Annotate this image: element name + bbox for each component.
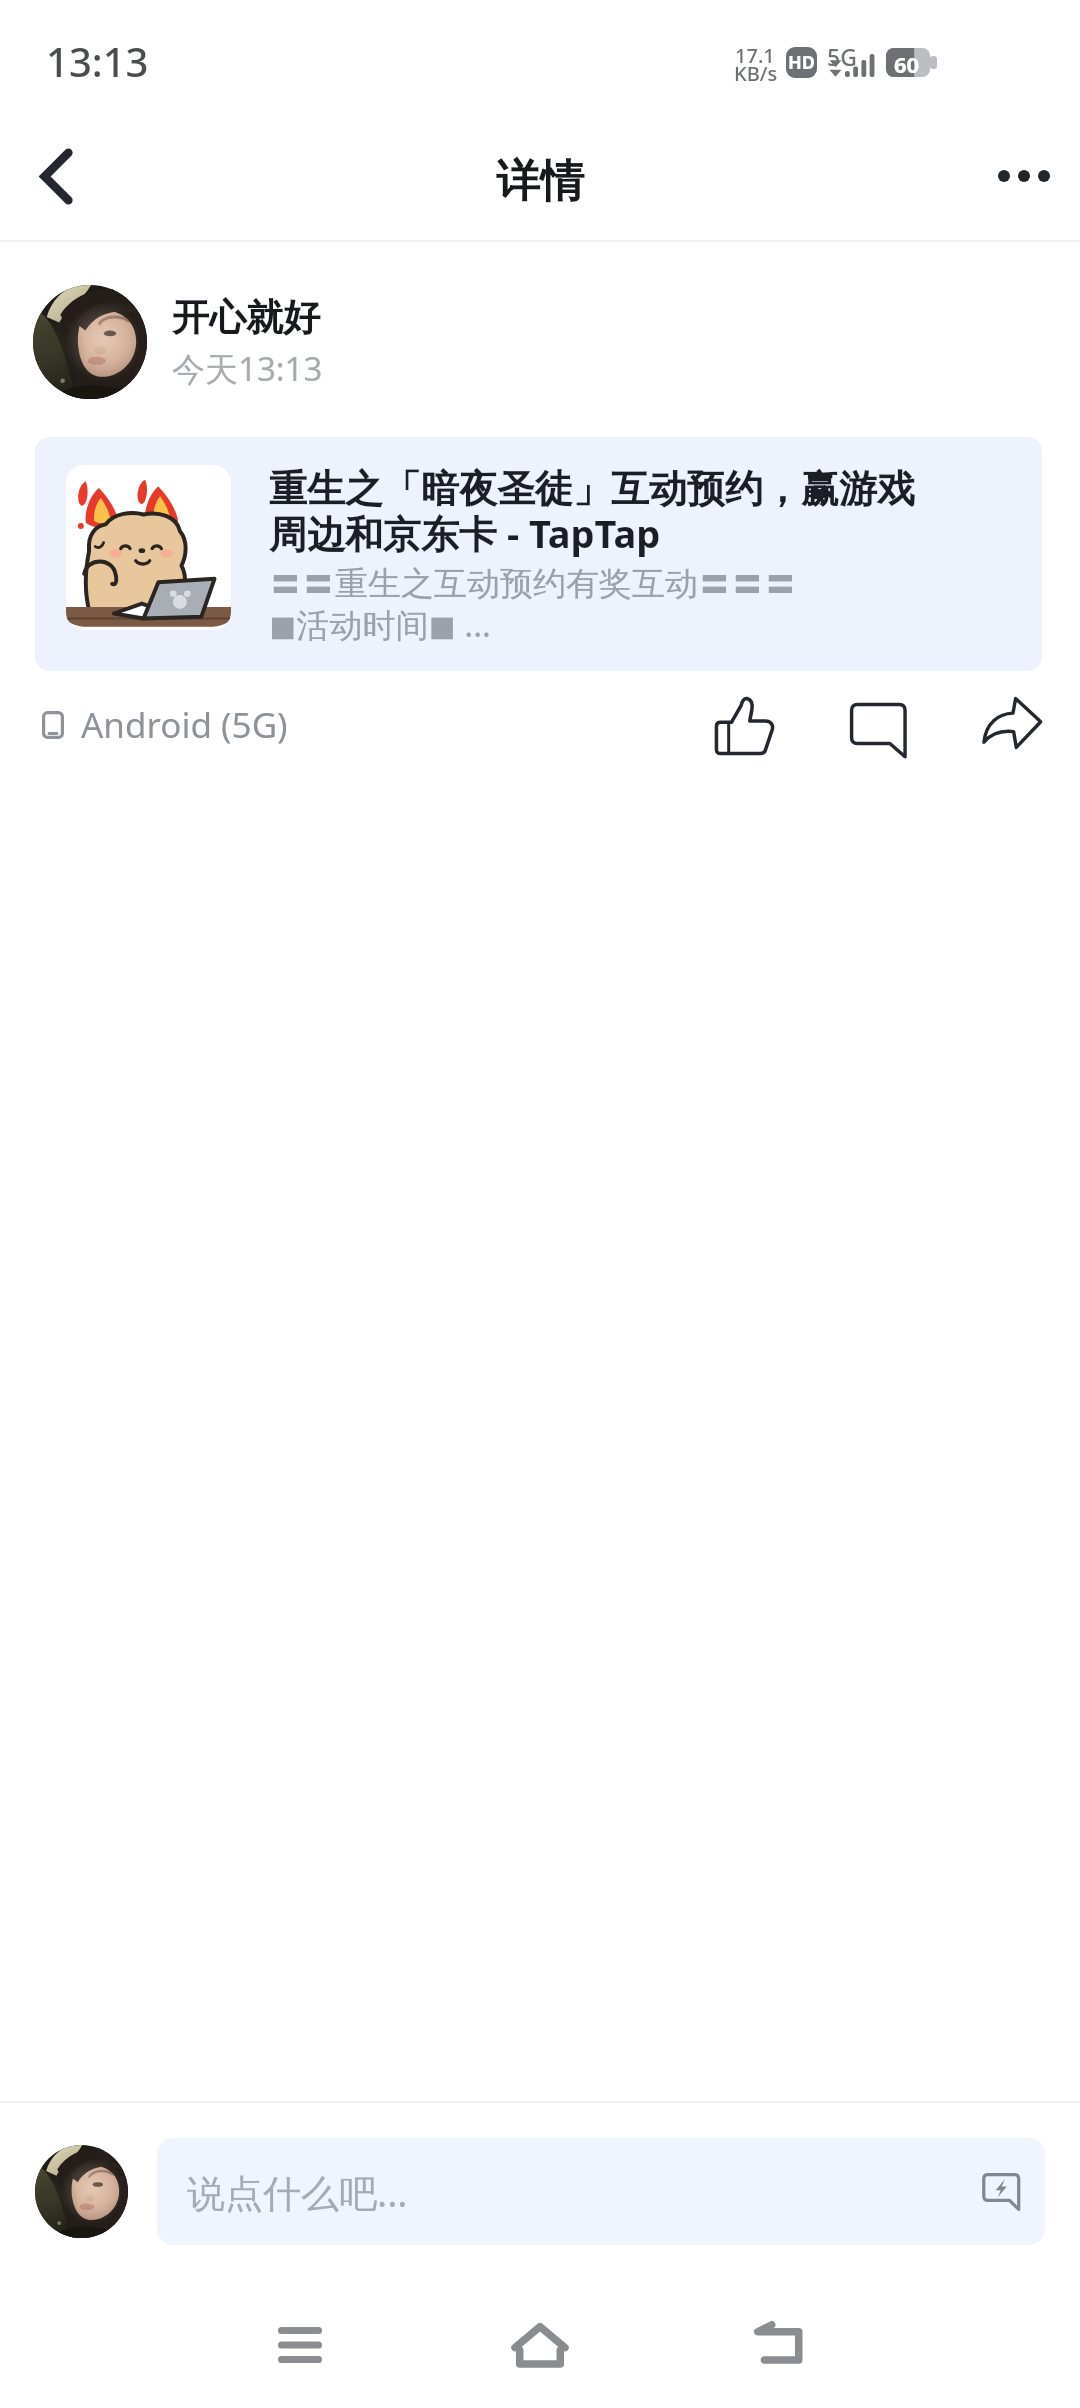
- button[interactable]: 重生之「暗夜圣徒」互动预约，赢游戏 周边和京东卡 - TapTap: [35, 437, 1042, 671]
- staticText: 13:13: [46, 34, 149, 88]
- button[interactable]: Comment: [840, 687, 916, 763]
- staticText: 开心就好: [172, 294, 320, 341]
- button[interactable]: 说点什么吧...: [157, 2138, 1045, 2245]
- button[interactable]: Recent apps: [240, 2285, 360, 2405]
- button[interactable]: Quick reply: [975, 2163, 1033, 2221]
- button[interactable]: More options: [964, 117, 1080, 235]
- button[interactable]: Like: [707, 687, 783, 763]
- staticText: 5G: [827, 41, 857, 72]
- button[interactable]: Back: [720, 2285, 840, 2405]
- staticText: KB/s: [734, 60, 778, 87]
- button[interactable]: Profile photo: [33, 285, 323, 399]
- staticText: 详情: [496, 154, 584, 209]
- button[interactable]: Share: [973, 687, 1049, 763]
- staticText: 17.1: [735, 42, 775, 69]
- staticText: Android (5G): [81, 701, 288, 749]
- button[interactable]: Home: [480, 2285, 600, 2405]
- staticText: 今天13:13: [172, 346, 323, 391]
- staticText: 〓〓重生之互动预约有奖互动〓〓〓 ◼活动时间◼ ...: [269, 563, 797, 647]
- staticText: HD: [788, 50, 815, 75]
- staticText: 60: [894, 49, 920, 78]
- button[interactable]: Back: [0, 117, 116, 235]
- other: Profile photo: [33, 285, 147, 399]
- staticText: 重生之「暗夜圣徒」互动预约，赢游戏 周边和京东卡 - TapTap: [269, 465, 915, 559]
- staticText: 说点什么吧...: [187, 2166, 408, 2218]
